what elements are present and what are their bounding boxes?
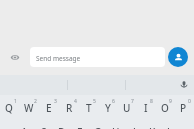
button[interactable]: I bbox=[136, 95, 155, 120]
staticText: E bbox=[46, 101, 52, 115]
button[interactable]: Voice input bbox=[174, 74, 194, 94]
staticText: Q bbox=[5, 101, 13, 115]
staticText: H bbox=[112, 125, 120, 129]
button[interactable]: D bbox=[53, 120, 71, 129]
staticText: D bbox=[58, 125, 66, 129]
staticText: L bbox=[167, 125, 173, 129]
button[interactable]: Y bbox=[98, 95, 117, 120]
staticText: 0 bbox=[188, 98, 191, 105]
staticText: F bbox=[77, 125, 83, 129]
staticText: 7 bbox=[131, 98, 134, 105]
staticText: 2 bbox=[34, 98, 37, 105]
button[interactable]: F bbox=[71, 120, 89, 129]
staticText: Y bbox=[105, 101, 111, 115]
staticText: K bbox=[149, 125, 156, 129]
staticText: 6 bbox=[112, 98, 115, 105]
button[interactable]: A bbox=[15, 120, 34, 129]
staticText: 8 bbox=[150, 98, 153, 105]
button[interactable]: GIF bbox=[7, 49, 23, 65]
staticText: Send message bbox=[36, 54, 81, 63]
staticText: J bbox=[133, 125, 136, 129]
staticText: O bbox=[161, 101, 169, 115]
button[interactable]: Send bbox=[168, 47, 188, 67]
staticText: I bbox=[144, 101, 148, 115]
staticText: 9 bbox=[169, 98, 172, 105]
button[interactable]: G bbox=[89, 120, 107, 129]
staticText: S bbox=[41, 125, 47, 129]
button[interactable]: J bbox=[125, 120, 143, 129]
staticText: 3 bbox=[54, 98, 57, 105]
button[interactable]: E bbox=[39, 95, 59, 120]
staticText: 4 bbox=[74, 98, 77, 105]
button[interactable]: S bbox=[34, 120, 53, 129]
button[interactable]: U bbox=[117, 95, 136, 120]
staticText: 1 bbox=[14, 98, 17, 105]
button[interactable]: W bbox=[19, 95, 39, 120]
staticText: A bbox=[21, 125, 28, 129]
staticText: T bbox=[86, 101, 92, 115]
button[interactable]: Suggestion 3 bbox=[125, 75, 182, 95]
staticText: G bbox=[94, 125, 102, 129]
button[interactable]: L bbox=[161, 120, 179, 129]
button[interactable]: T bbox=[79, 95, 98, 120]
button[interactable]: Send message bbox=[30, 47, 165, 67]
button[interactable]: H bbox=[107, 120, 125, 129]
staticText: P bbox=[180, 101, 187, 115]
button[interactable]: Q bbox=[0, 95, 19, 120]
button[interactable]: R bbox=[59, 95, 79, 120]
button[interactable]: P bbox=[174, 95, 193, 120]
button[interactable]: K bbox=[143, 120, 161, 129]
staticText: 5 bbox=[93, 98, 96, 105]
staticText: U bbox=[123, 101, 131, 115]
staticText: R bbox=[66, 101, 73, 115]
button[interactable]: O bbox=[155, 95, 174, 120]
staticText: W bbox=[24, 101, 34, 115]
